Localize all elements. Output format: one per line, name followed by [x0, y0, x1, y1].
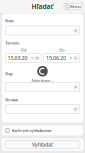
staticText: Do [59, 47, 64, 52]
staticText: Vyhľadať [32, 141, 53, 148]
staticText: Dop [5, 71, 13, 76]
staticText: × [69, 54, 72, 62]
staticText: Nahrávam... [31, 78, 53, 83]
staticText: Strava: [5, 97, 18, 102]
staticText: Rozšírené vyhľadávanie [12, 128, 52, 133]
button[interactable]: Menu [64, 3, 82, 10]
staticText: Hľadať [31, 2, 53, 11]
staticText: Menu [70, 4, 80, 9]
staticText: 15.06.20 [46, 54, 66, 62]
staticText: × [31, 54, 34, 62]
button[interactable]: Rozšírené vyhľadávanie [0, 125, 85, 135]
staticText: 15.03.20 [7, 54, 27, 62]
staticText: Od [21, 47, 26, 52]
staticText: Stav: [5, 18, 14, 23]
staticText: Termín: [5, 40, 20, 46]
button[interactable]: Vyhľadať [0, 138, 85, 150]
